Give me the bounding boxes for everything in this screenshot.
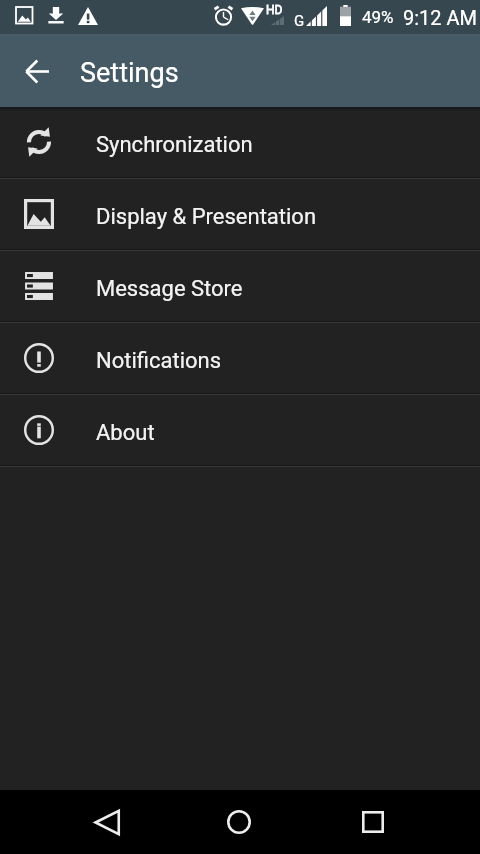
button[interactable]: About — [0, 395, 480, 465]
button[interactable]: Back — [75, 790, 139, 854]
staticText: 49% — [362, 7, 394, 27]
button[interactable]: Notifications — [0, 323, 480, 393]
staticText: Settings — [80, 57, 179, 89]
staticText: 9:12 AM — [403, 6, 478, 29]
button[interactable]: Back — [13, 47, 61, 95]
staticText: Message Store — [96, 276, 243, 302]
staticText: Display & Presentation — [96, 204, 317, 230]
staticText: About — [96, 420, 155, 446]
button[interactable]: Recent apps — [341, 790, 405, 854]
staticText: HD — [266, 3, 283, 17]
staticText: G — [294, 12, 305, 30]
button[interactable]: Home — [207, 790, 271, 854]
button[interactable]: Synchronization — [0, 107, 480, 177]
staticText: Notifications — [96, 348, 222, 374]
staticText: Synchronization — [96, 132, 253, 158]
button[interactable]: Message Store — [0, 251, 480, 321]
button[interactable]: Display & Presentation — [0, 179, 480, 249]
